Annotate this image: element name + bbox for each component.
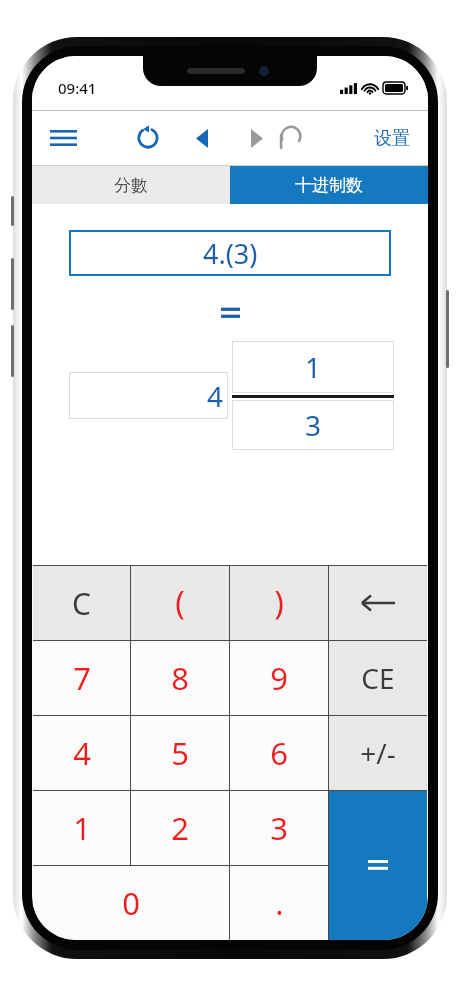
button[interactable]: 1 [232,341,394,393]
button[interactable]: 4.(3) [69,230,391,276]
staticText: 9 [270,657,288,699]
staticText: 5 [171,732,189,774]
staticText: +/- [360,734,396,772]
button[interactable]: 6 [230,716,328,790]
staticText: 3 [305,406,322,444]
button[interactable]: 8 [131,641,229,715]
button[interactable]: 十进制数 [230,166,428,204]
button[interactable]: 5 [131,716,229,790]
button[interactable]: ( [131,566,229,640]
staticText: 4 [73,732,91,774]
staticText: 十进制数 [295,175,363,196]
staticText: 分數 [114,175,148,196]
button[interactable]: Backspace [329,566,427,640]
button[interactable] [329,791,427,940]
staticText: 4.(3) [203,235,258,272]
staticText: ) [274,581,284,625]
button[interactable]: Menu [40,115,86,161]
staticText: ( [175,581,185,625]
staticText: 09:41 [58,78,97,98]
button[interactable]: Next [234,115,280,161]
button[interactable]: 分數 [32,166,230,204]
button[interactable]: ) [230,566,328,640]
button[interactable]: Undo [268,115,314,161]
button[interactable]: 7 [33,641,130,715]
staticText: 2 [171,807,189,849]
staticText: C [72,583,91,624]
button[interactable]: 设置 [366,119,418,158]
button[interactable]: 1 [33,791,130,865]
staticText: 8 [171,657,189,699]
button[interactable]: 4 [33,716,130,790]
staticText: CE [361,659,395,697]
staticText: 6 [270,732,288,774]
staticText: 4 [207,377,224,415]
button[interactable]: Previous [179,115,225,161]
button[interactable]: Refresh [125,115,171,161]
button[interactable]: C [33,566,130,640]
staticText: 1 [305,348,322,386]
staticText: 3 [270,807,288,849]
staticText: 7 [73,657,91,699]
button[interactable]: 0 [33,866,229,940]
button[interactable]: 3 [232,400,394,450]
button[interactable]: 9 [230,641,328,715]
button[interactable]: 4 [69,372,228,419]
staticText: 0 [122,882,140,924]
button[interactable]: CE [329,641,427,715]
button[interactable]: 2 [131,791,229,865]
button[interactable]: +/- [329,716,427,790]
button[interactable]: . [230,866,328,940]
button[interactable]: 3 [230,791,328,865]
staticText: 1 [73,807,91,849]
staticText: 设置 [374,127,410,150]
staticText: . [275,882,284,924]
